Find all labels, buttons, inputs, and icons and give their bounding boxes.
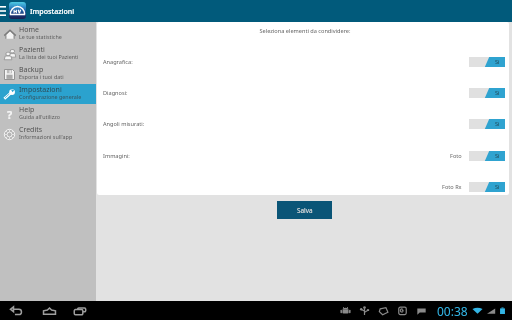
staticText: 00:38: [437, 303, 468, 319]
staticText: Salva: [297, 206, 313, 215]
staticText: Si: [495, 183, 500, 191]
staticText: Help: [19, 105, 35, 115]
staticText: Foto: [450, 152, 462, 160]
button[interactable]: Backup: [0, 64, 96, 84]
staticText: Le tue statistiche: [19, 33, 62, 40]
staticText: Informazioni sull'app: [19, 133, 73, 140]
button[interactable]: Pazienti: [0, 44, 96, 64]
button[interactable]: Si / No toggle: [469, 57, 505, 67]
button[interactable]: App logo: [9, 2, 26, 19]
staticText: Pazienti: [19, 45, 45, 55]
button[interactable]: Back: [4, 301, 28, 320]
staticText: Angoli misurati:: [103, 120, 145, 128]
staticText: Si: [495, 152, 500, 160]
staticText: Si: [495, 120, 500, 128]
button[interactable]: Credits: [0, 124, 96, 144]
button[interactable]: Si / No toggle: [469, 182, 505, 192]
button[interactable]: Si / No toggle: [469, 151, 505, 161]
staticText: La lista dei tuoi Pazienti: [19, 53, 79, 60]
button[interactable]: ?: [0, 104, 96, 124]
staticText: Configurazione generale: [19, 93, 82, 100]
staticText: Anagrafica:: [103, 58, 133, 66]
staticText: Seleziona elementi da condividere:: [99, 27, 509, 35]
staticText: Esporta i tuoi dati: [19, 73, 64, 80]
staticText: Credits: [19, 125, 43, 135]
staticText: ?: [7, 107, 13, 122]
button[interactable]: Si / No toggle: [469, 88, 505, 98]
staticText: Impostazioni: [30, 6, 75, 16]
button[interactable]: Recent apps: [68, 301, 92, 320]
staticText: Impostazioni: [19, 85, 62, 95]
staticText: Diagnosi:: [103, 89, 128, 97]
button[interactable]: Si / No toggle: [469, 119, 505, 129]
staticText: Guida all'utilizzo: [19, 113, 61, 120]
button[interactable]: Open navigation drawer: [0, 0, 8, 22]
button[interactable]: Impostazioni: [0, 84, 96, 104]
button[interactable]: Home: [0, 24, 96, 44]
staticText: Foto Rx: [442, 183, 462, 191]
staticText: Backup: [19, 65, 44, 75]
staticText: Home: [19, 25, 39, 35]
button[interactable]: Salva: [277, 201, 332, 219]
staticText: Si: [495, 58, 500, 66]
button[interactable]: Home: [37, 301, 61, 320]
staticText: Si: [495, 89, 500, 97]
staticText: Immagini:: [103, 152, 130, 160]
